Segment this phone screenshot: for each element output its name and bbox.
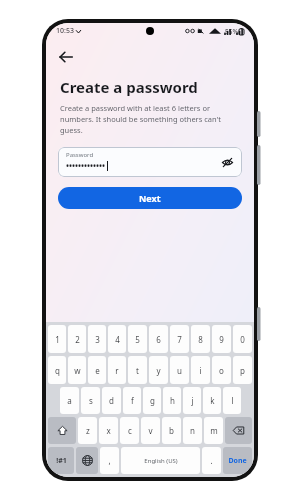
staticText: 55% <box>225 27 238 36</box>
staticText: 8 <box>198 334 203 345</box>
staticText: 6 <box>156 334 161 345</box>
staticText: r <box>115 365 119 376</box>
button[interactable]: x <box>99 417 118 444</box>
staticText: d <box>109 395 114 406</box>
staticText: y <box>156 365 161 376</box>
button[interactable]: a <box>60 387 79 414</box>
staticText: 5 <box>135 334 140 345</box>
staticText: q <box>55 365 60 376</box>
staticText: s <box>89 395 93 406</box>
button[interactable]: c <box>120 417 139 444</box>
staticText: 3 <box>95 334 100 345</box>
button[interactable]: 6 <box>149 325 168 353</box>
button[interactable]: Done <box>223 447 252 474</box>
button[interactable]: j <box>183 387 201 414</box>
button[interactable]: d <box>102 387 121 414</box>
button[interactable]: 1 <box>48 325 66 353</box>
button[interactable]: f <box>123 387 141 414</box>
staticText: , <box>108 455 111 466</box>
button[interactable]: Back <box>52 43 80 71</box>
staticText: j <box>191 395 194 406</box>
staticText: f <box>131 395 134 406</box>
button[interactable]: u <box>170 356 189 384</box>
staticText: l <box>231 395 234 406</box>
staticText: Password <box>66 151 94 159</box>
button[interactable]: 3 <box>88 325 106 353</box>
button[interactable]: Password <box>58 147 242 177</box>
button[interactable]: z <box>78 417 97 444</box>
staticText: 2 <box>75 334 80 345</box>
staticText: . <box>210 455 213 466</box>
button[interactable]: g <box>143 387 161 414</box>
button[interactable]: o <box>212 356 231 384</box>
button[interactable]: p <box>233 356 252 384</box>
button[interactable]: . <box>202 447 221 474</box>
staticText: 1 <box>55 334 60 345</box>
staticText: a <box>67 395 72 406</box>
staticText: English (US) <box>144 457 178 465</box>
staticText: u <box>177 365 182 376</box>
staticText: Create a password <box>60 77 198 97</box>
button[interactable]: Next <box>58 187 242 209</box>
staticText: n <box>190 425 195 436</box>
staticText: 9 <box>219 334 224 345</box>
staticText: g <box>150 395 155 406</box>
staticText: o <box>219 365 224 376</box>
button[interactable]: n <box>183 417 202 444</box>
staticText: p <box>240 365 245 376</box>
button[interactable]: English (US) <box>121 447 200 474</box>
button[interactable]: Key <box>48 417 76 444</box>
button[interactable]: s <box>81 387 100 414</box>
staticText: x <box>106 425 111 436</box>
button[interactable]: 7 <box>170 325 189 353</box>
button[interactable]: h <box>163 387 181 414</box>
button[interactable]: 0 <box>233 325 252 353</box>
staticText: h <box>170 395 175 406</box>
button[interactable]: 8 <box>191 325 210 353</box>
staticText: v <box>148 425 153 436</box>
staticText: e <box>95 365 100 376</box>
staticText: Next <box>139 192 161 204</box>
staticText: k <box>210 395 215 406</box>
staticText: w <box>74 365 81 376</box>
staticText: 10:53 <box>56 26 74 36</box>
staticText: 7 <box>177 334 182 345</box>
button[interactable]: m <box>204 417 223 444</box>
button[interactable]: r <box>108 356 126 384</box>
staticText: i <box>199 365 202 376</box>
staticText: t <box>136 365 139 376</box>
button[interactable]: l <box>223 387 241 414</box>
button[interactable]: q <box>48 356 66 384</box>
button[interactable]: b <box>162 417 181 444</box>
staticText: !#1 <box>56 456 67 466</box>
button[interactable]: w <box>68 356 86 384</box>
button[interactable]: y <box>149 356 168 384</box>
staticText: m <box>210 425 218 436</box>
button[interactable]: Show password <box>218 153 236 171</box>
button[interactable]: t <box>128 356 147 384</box>
button[interactable]: !#1 <box>48 447 74 474</box>
button[interactable]: v <box>141 417 160 444</box>
staticText: 0 <box>240 334 245 345</box>
button[interactable]: Key <box>76 447 98 474</box>
button[interactable]: Key <box>225 417 252 444</box>
staticText: Done <box>228 456 247 466</box>
button[interactable]: 4 <box>108 325 126 353</box>
staticText: z <box>86 425 90 436</box>
button[interactable]: 9 <box>212 325 231 353</box>
button[interactable]: i <box>191 356 210 384</box>
staticText: b <box>169 425 174 436</box>
staticText: Create a password with at least 6 letter… <box>60 103 236 135</box>
button[interactable]: 2 <box>68 325 86 353</box>
button[interactable]: 5 <box>128 325 147 353</box>
staticText: ••••••••••••• <box>66 160 106 171</box>
staticText: 4 <box>115 334 120 345</box>
button[interactable]: k <box>203 387 221 414</box>
button[interactable]: e <box>88 356 106 384</box>
button[interactable]: , <box>100 447 119 474</box>
staticText: c <box>128 425 132 436</box>
